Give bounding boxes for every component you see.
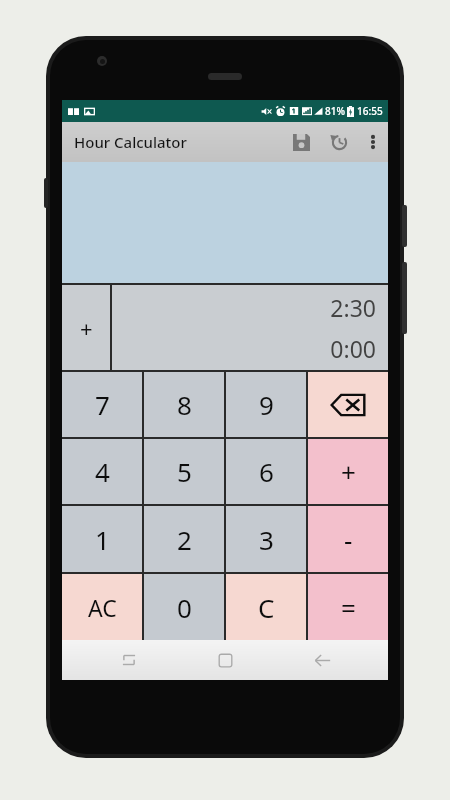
- button[interactable]: Recent apps: [99, 640, 159, 680]
- button[interactable]: Backspace: [308, 372, 388, 437]
- staticText: Hour Calculator: [74, 132, 187, 152]
- staticText: 1: [95, 522, 110, 557]
- staticText: =: [341, 590, 356, 625]
- staticText: 5: [177, 454, 192, 489]
- staticText: 6: [259, 454, 274, 489]
- button[interactable]: Save: [282, 123, 320, 161]
- staticText: 9: [259, 387, 274, 422]
- button[interactable]: 8: [144, 372, 224, 437]
- button[interactable]: 5: [144, 439, 224, 504]
- button[interactable]: AC: [62, 574, 142, 640]
- button[interactable]: 9: [226, 372, 306, 437]
- staticText: 3: [259, 522, 274, 557]
- staticText: AC: [88, 592, 117, 623]
- button[interactable]: 3: [226, 506, 306, 572]
- staticText: 81%: [325, 104, 345, 118]
- staticText: 2: [177, 522, 192, 557]
- button[interactable]: +: [62, 285, 110, 370]
- button[interactable]: Home: [195, 640, 255, 680]
- staticText: 4: [95, 454, 110, 489]
- staticText: +: [341, 454, 356, 489]
- button[interactable]: History: [320, 123, 358, 161]
- button[interactable]: C: [226, 574, 306, 640]
- button[interactable]: +: [308, 439, 388, 504]
- button[interactable]: 4: [62, 439, 142, 504]
- button[interactable]: -: [308, 506, 388, 572]
- staticText: 0:00: [330, 333, 376, 364]
- staticText: -: [344, 522, 353, 557]
- staticText: 16:55: [357, 104, 383, 118]
- staticText: 8: [177, 387, 192, 422]
- staticText: 0: [177, 590, 192, 625]
- button[interactable]: 1: [62, 506, 142, 572]
- button[interactable]: More options: [358, 127, 388, 157]
- staticText: 2:30: [330, 292, 376, 323]
- button[interactable]: 7: [62, 372, 142, 437]
- staticText: 7: [95, 387, 110, 422]
- button[interactable]: =: [308, 574, 388, 640]
- staticText: +: [80, 313, 93, 343]
- staticText: C: [258, 590, 275, 625]
- button[interactable]: 0: [144, 574, 224, 640]
- button[interactable]: 6: [226, 439, 306, 504]
- button[interactable]: Back: [292, 640, 352, 680]
- button[interactable]: 2: [144, 506, 224, 572]
